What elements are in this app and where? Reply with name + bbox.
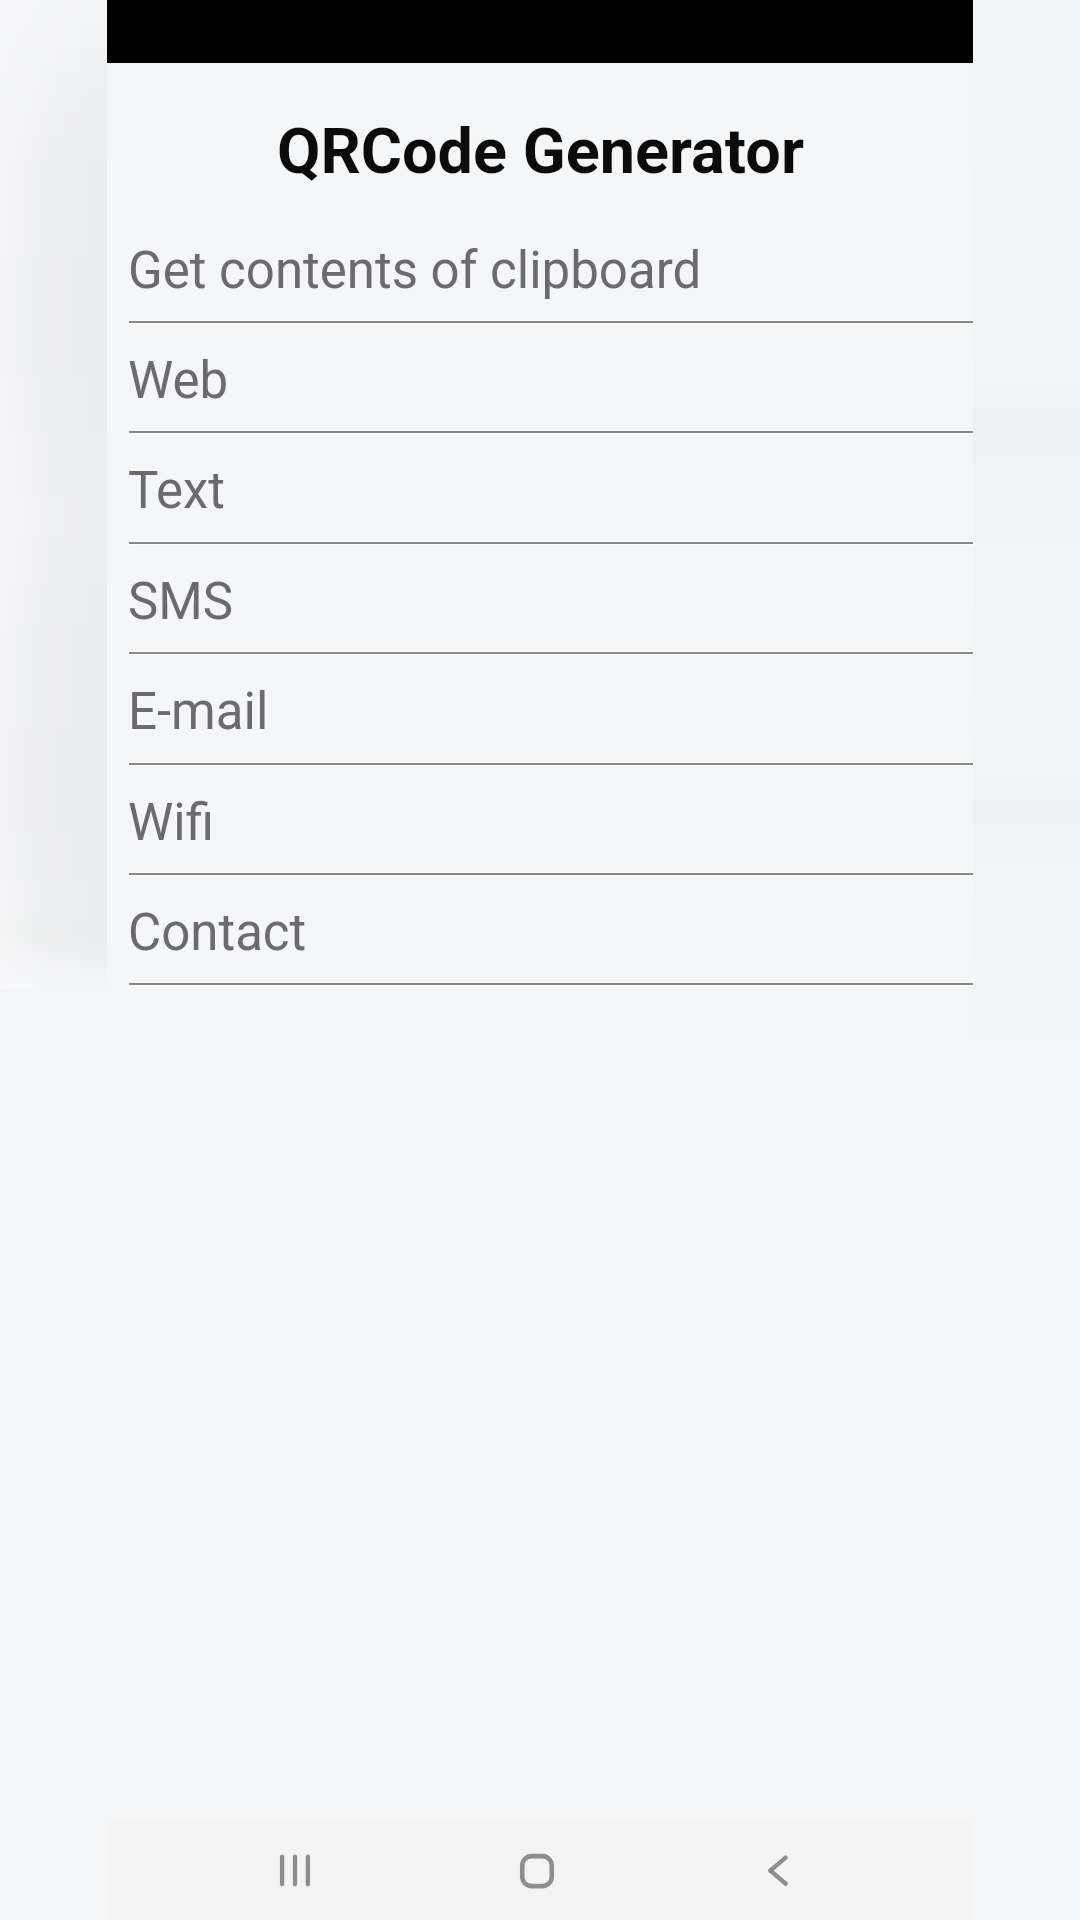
staticText: Contact <box>128 903 307 963</box>
button[interactable]: Web <box>0 322 1080 432</box>
button[interactable]: Contact <box>0 874 1080 984</box>
staticText: Text <box>128 461 225 521</box>
staticText: SMS <box>128 572 234 632</box>
button[interactable]: Home <box>416 1819 657 1920</box>
button[interactable]: Text <box>0 432 1080 542</box>
button[interactable]: Back <box>657 1819 898 1920</box>
button[interactable]: SMS <box>0 543 1080 653</box>
staticText: QRCode Generator <box>277 115 804 189</box>
button[interactable]: Get contents of clipboard <box>0 212 1080 322</box>
button[interactable]: Wifi <box>0 764 1080 874</box>
staticText: E-mail <box>128 682 269 742</box>
staticText: Wifi <box>128 793 214 853</box>
button[interactable]: E-mail <box>0 653 1080 763</box>
button[interactable]: Recent apps <box>174 1819 416 1920</box>
staticText: Get contents of clipboard <box>128 241 702 301</box>
staticText: Web <box>128 351 229 411</box>
